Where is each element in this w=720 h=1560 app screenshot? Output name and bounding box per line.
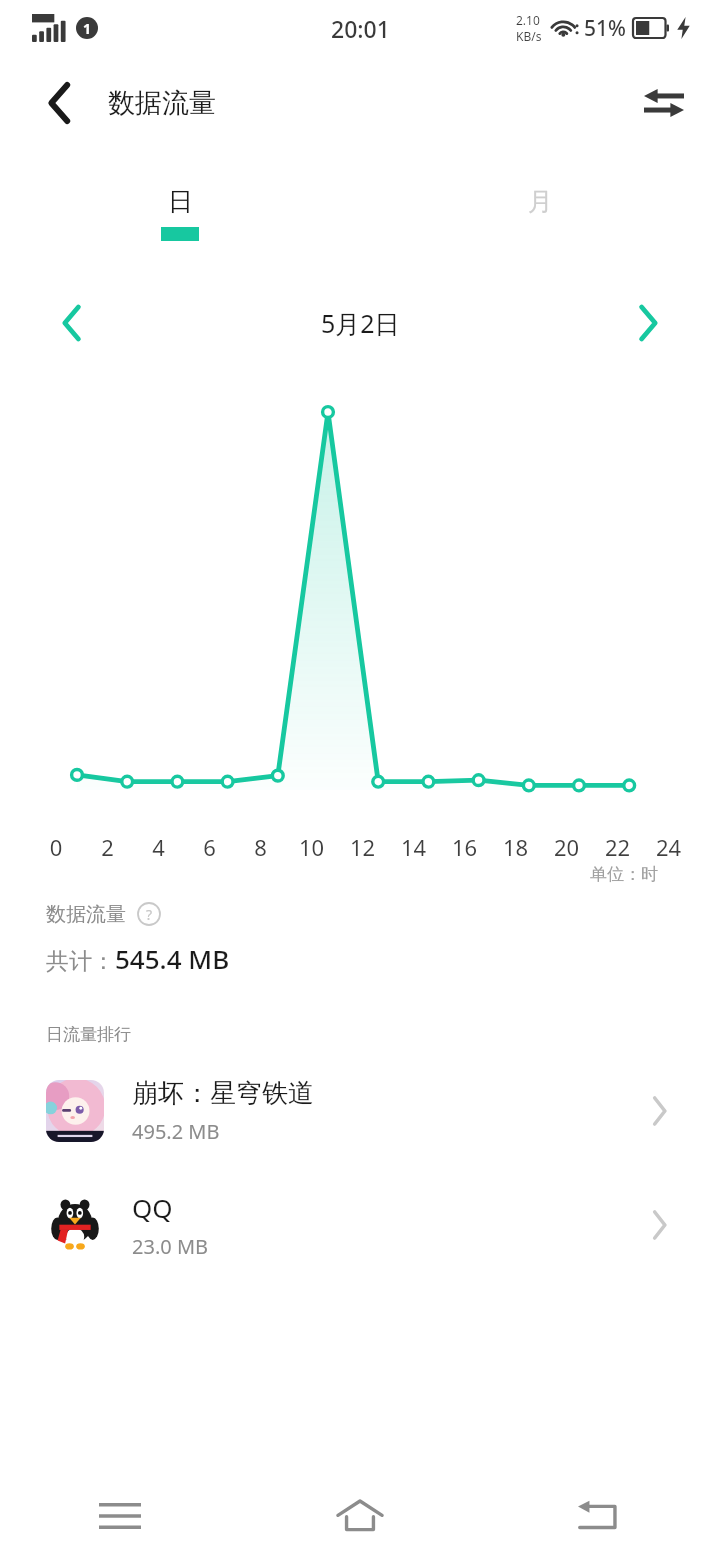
staticText: 0 (30, 832, 82, 862)
staticText: 8 (235, 832, 286, 862)
staticText: 单位：时 (0, 864, 658, 885)
staticText: 2.10 (516, 12, 540, 28)
staticText: 数据流量 (108, 86, 216, 120)
staticText: 共计： (46, 947, 115, 976)
staticText: 崩坏：星穹铁道 (132, 1077, 314, 1110)
button[interactable]: Back (28, 71, 92, 135)
staticText: 6 (184, 832, 235, 862)
staticText: 数据流量 (46, 902, 126, 927)
staticText: 545.4 MB (115, 941, 230, 976)
staticText: 20:01 (331, 13, 390, 44)
button[interactable]: 日 (0, 186, 360, 258)
button[interactable]: Help (136, 901, 162, 927)
staticText: 20 (541, 832, 592, 862)
staticText: 月 (528, 186, 553, 217)
staticText: 日流量排行 (46, 1024, 131, 1045)
button[interactable]: Previous day (44, 295, 100, 351)
staticText: 1 (83, 19, 92, 38)
button[interactable]: QQ (0, 1185, 720, 1265)
staticText: 2 (82, 832, 133, 862)
button[interactable]: Recent apps (0, 1472, 240, 1560)
staticText: 日 (168, 186, 193, 217)
button[interactable]: 月 (360, 186, 720, 258)
staticText: 12 (337, 832, 388, 862)
button[interactable]: Switch network (632, 71, 696, 135)
staticText: 4 (133, 832, 184, 862)
staticText: 10 (286, 832, 337, 862)
staticText: QQ (132, 1190, 173, 1225)
staticText: 16 (439, 832, 490, 862)
staticText: KB/s (516, 28, 542, 44)
staticText: 51% (584, 14, 626, 43)
staticText: 23.0 MB (132, 1233, 209, 1260)
button[interactable]: Home (240, 1472, 480, 1560)
button[interactable]: Back (480, 1472, 720, 1560)
staticText: 14 (388, 832, 439, 862)
staticText: 495.2 MB (132, 1118, 220, 1145)
staticText: 24 (643, 832, 694, 862)
staticText: 5月2日 (321, 306, 400, 340)
staticText: ? (146, 905, 153, 924)
button[interactable]: Next day (620, 295, 676, 351)
staticText: 18 (490, 832, 541, 862)
staticText: 22 (592, 832, 643, 862)
button[interactable]: 崩坏：星穹铁道 (0, 1071, 720, 1151)
